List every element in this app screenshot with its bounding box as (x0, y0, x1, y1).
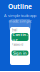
staticText: Continue (12, 32, 27, 42)
staticText: Email (11, 28, 17, 32)
staticText: Outline (8, 2, 32, 11)
button[interactable]: Sign in (11, 50, 28, 55)
button[interactable]: Continue (11, 33, 28, 41)
staticText: Sign in (13, 50, 27, 56)
staticText: Password (11, 43, 23, 46)
staticText: made simple (8, 18, 31, 23)
staticText: A simple to-do app (4, 13, 36, 18)
